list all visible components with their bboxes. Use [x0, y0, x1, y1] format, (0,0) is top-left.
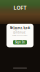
staticText: Sign in to continue: [13, 27, 27, 34]
staticText: Sign In: [15, 40, 25, 44]
staticText: LOFT: [13, 4, 26, 11]
button[interactable]: Sign In: [13, 40, 27, 44]
staticText: Welcome back: [9, 26, 30, 30]
staticText: Email or phone number: [12, 34, 28, 36]
